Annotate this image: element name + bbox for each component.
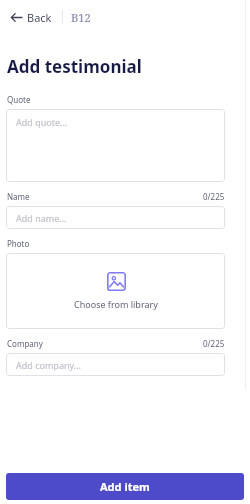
button[interactable]: Add item bbox=[6, 473, 244, 500]
staticText: Back bbox=[27, 10, 52, 25]
staticText: Add quote... bbox=[16, 116, 68, 128]
staticText: Company bbox=[7, 338, 43, 349]
staticText: Add company... bbox=[16, 359, 81, 371]
staticText: Quote bbox=[7, 94, 31, 105]
staticText: 0/225 bbox=[203, 191, 225, 202]
button[interactable]: Add company... bbox=[6, 353, 225, 376]
staticText: Add testimonial bbox=[7, 55, 142, 78]
staticText: Choose from library bbox=[74, 298, 158, 310]
staticText: Name bbox=[7, 191, 30, 202]
button[interactable]: Add name... bbox=[6, 206, 225, 229]
staticText: Add item bbox=[100, 479, 150, 494]
button[interactable]: Add quote... bbox=[6, 109, 225, 182]
staticText: Add name... bbox=[16, 212, 67, 224]
button[interactable]: Back bbox=[8, 6, 54, 29]
staticText: 0/225 bbox=[203, 338, 225, 349]
staticText: Photo bbox=[7, 238, 30, 249]
button[interactable]: Choose from library bbox=[6, 253, 225, 329]
staticText: B12 bbox=[71, 10, 91, 25]
